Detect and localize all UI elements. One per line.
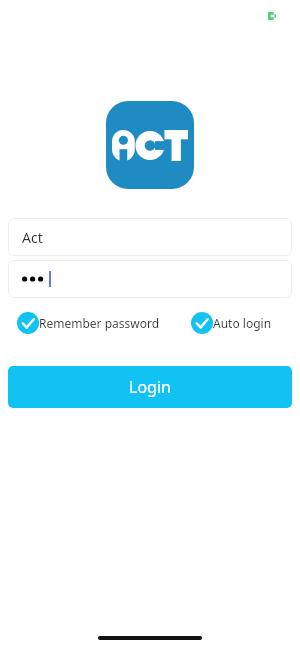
button[interactable]: Act bbox=[8, 218, 292, 256]
staticText: Login bbox=[129, 376, 171, 398]
button[interactable]: Login bbox=[8, 366, 292, 408]
button[interactable]: Remember password bbox=[17, 312, 160, 334]
staticText: Auto login bbox=[213, 315, 272, 331]
staticText: Remember password bbox=[39, 315, 160, 331]
staticText: Act bbox=[22, 228, 43, 247]
button[interactable] bbox=[8, 260, 292, 298]
button[interactable]: Auto login bbox=[191, 312, 272, 334]
